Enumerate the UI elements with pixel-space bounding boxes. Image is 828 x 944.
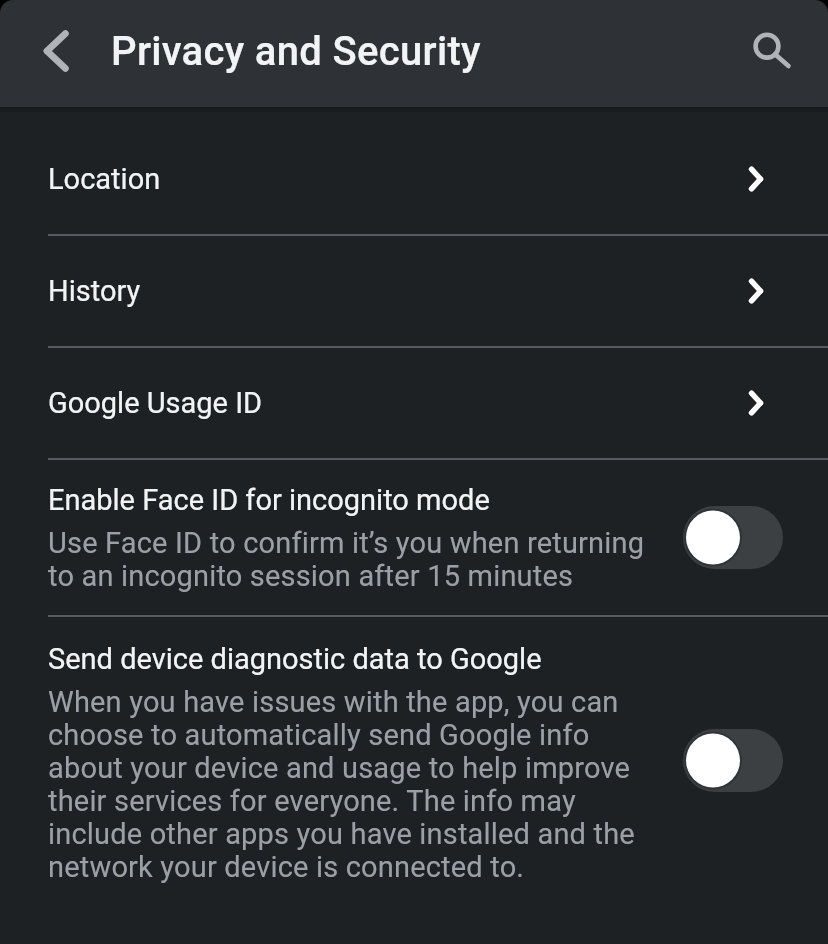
staticText: Privacy and Security (111, 28, 481, 75)
staticText: History (48, 274, 141, 308)
button[interactable]: Send device diagnostic data to Google (0, 617, 828, 944)
button[interactable]: Enable Face ID for incognito mode (0, 460, 828, 615)
staticText: Location (48, 162, 161, 196)
button[interactable]: Google Usage ID (0, 348, 828, 458)
staticText: Google Usage ID (48, 386, 263, 420)
button[interactable]: History (0, 236, 828, 346)
button[interactable]: Location (0, 124, 828, 234)
staticText: Enable Face ID for incognito mode (48, 484, 490, 517)
button[interactable]: Toggle (683, 729, 783, 792)
button[interactable]: Toggle (683, 506, 783, 569)
staticText: Use Face ID to confirm it’s you when ret… (48, 527, 653, 593)
button[interactable]: Search (740, 18, 812, 90)
staticText: When you have issues with the app, you c… (48, 686, 653, 884)
button[interactable]: Back (14, 18, 86, 90)
staticText: Send device diagnostic data to Google (48, 643, 542, 676)
